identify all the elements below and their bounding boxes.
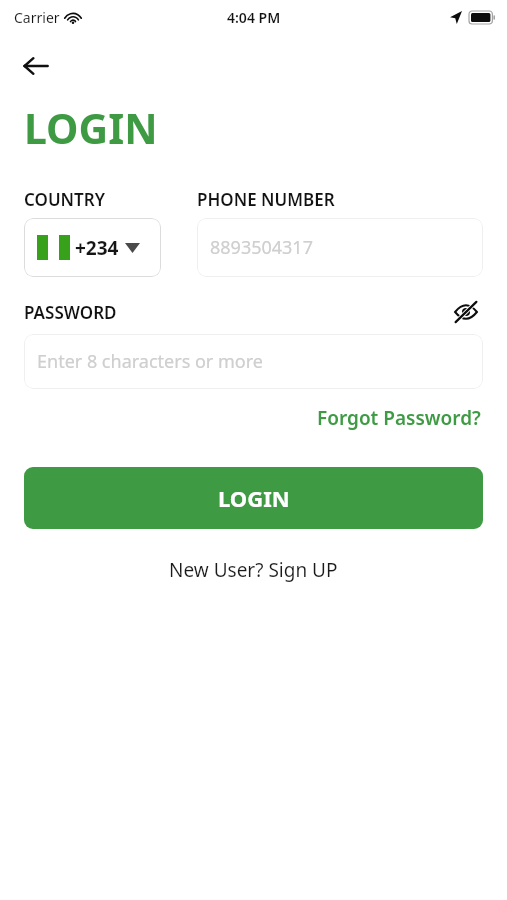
staticText: New User? Sign UP [169,557,338,583]
staticText: LOGIN [24,100,158,156]
staticText: LOGIN [218,483,290,513]
staticText: PASSWORD [24,301,117,324]
staticText: +234 [75,235,119,261]
staticText: PHONE NUMBER [197,188,335,211]
staticText: Enter 8 characters or more [37,349,263,374]
staticText: Carrier [14,8,60,27]
button[interactable]: Show password [449,295,483,329]
button[interactable]: Forgot Password? [315,401,483,435]
staticText: COUNTRY [24,188,105,211]
staticText: 4:04 PM [227,8,281,27]
staticText: Forgot Password? [317,405,481,431]
button[interactable]: Enter 8 characters or more [24,334,483,389]
button[interactable]: LOGIN [24,467,483,529]
button[interactable]: Back [14,44,58,88]
button[interactable]: New User? Sign UP [163,551,344,589]
button[interactable]: 8893504317 [197,218,483,277]
staticText: 8893504317 [210,235,313,260]
button[interactable]: +234 [24,218,161,277]
